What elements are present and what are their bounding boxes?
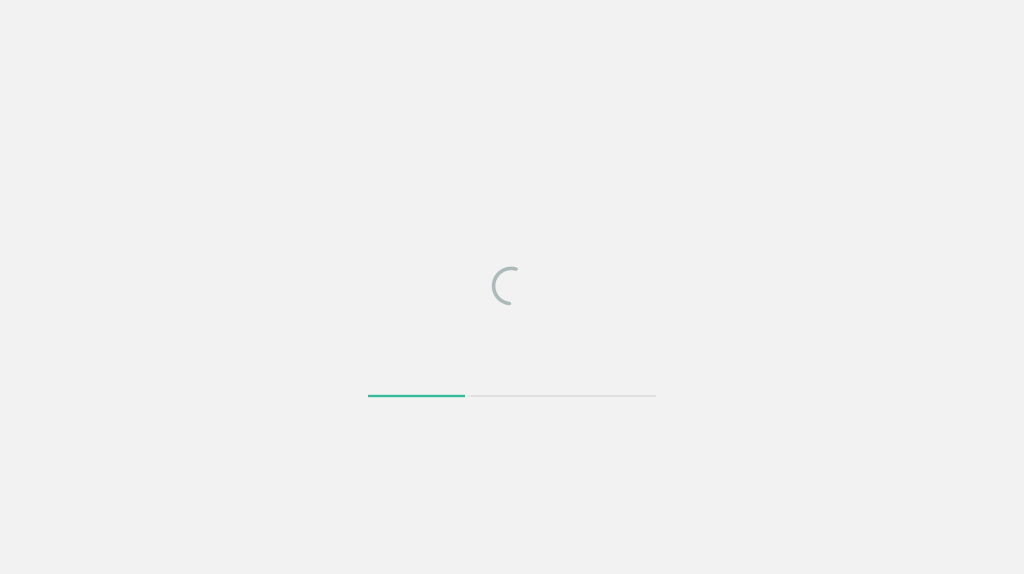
- group: Loading: [492, 267, 531, 305]
- group: 34%: [368, 395, 656, 397]
